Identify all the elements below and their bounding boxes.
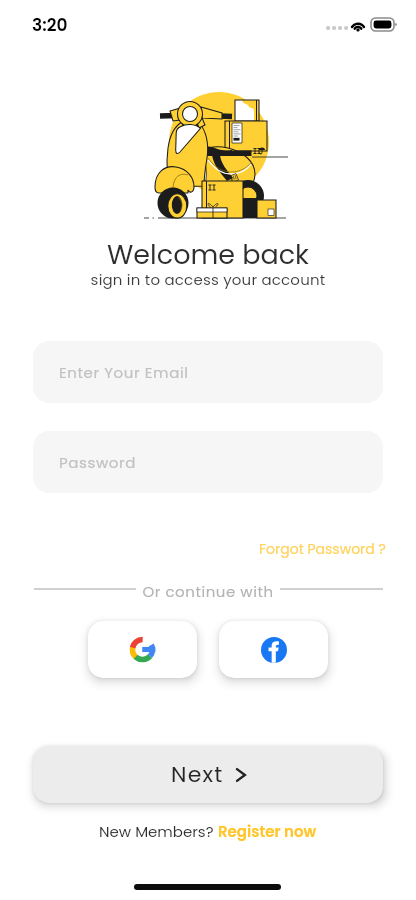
button[interactable]: Sign in with Facebook xyxy=(219,621,328,678)
staticText: Welcome back xyxy=(0,236,416,274)
staticText: sign in to access your account xyxy=(0,269,416,290)
staticText: Password xyxy=(59,452,136,473)
staticText: Or continue with xyxy=(0,581,416,602)
button[interactable]: Register now xyxy=(218,821,317,842)
staticText: Register now xyxy=(218,821,317,842)
staticText: Next xyxy=(171,759,224,790)
button[interactable]: Password xyxy=(33,431,383,493)
button[interactable]: Next xyxy=(33,746,383,803)
staticText: Forgot Password ? xyxy=(259,539,386,559)
button[interactable]: Sign in with Google xyxy=(88,621,197,678)
button[interactable]: Forgot Password ? xyxy=(257,537,388,561)
staticText: 3:20 xyxy=(32,13,68,37)
staticText: New Members? xyxy=(99,821,218,842)
staticText: Enter Your Email xyxy=(59,362,189,383)
button[interactable]: Enter Your Email xyxy=(33,341,383,403)
